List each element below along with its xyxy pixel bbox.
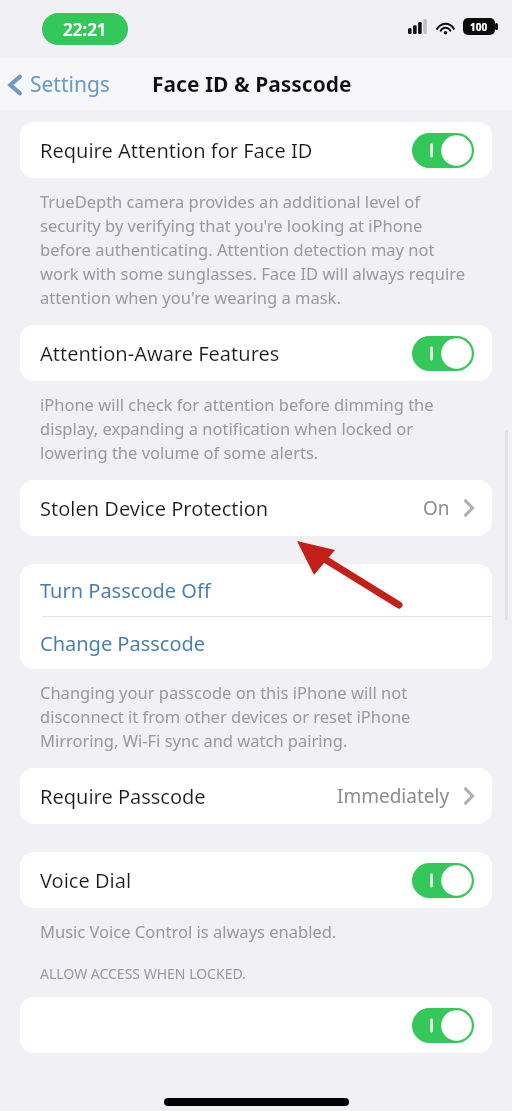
staticText: Voice Dial (40, 867, 412, 894)
staticText: TrueDepth camera provides an additional … (40, 190, 468, 309)
staticText: ALLOW ACCESS WHEN LOCKED. (40, 964, 246, 983)
button[interactable]: Require Attention for Face ID (20, 122, 492, 178)
button[interactable]: Turn Passcode Off (20, 564, 492, 616)
staticText: Immediately (337, 783, 450, 809)
staticText: Turn Passcode Off (40, 577, 211, 604)
staticText: 22:21 (63, 18, 107, 41)
button[interactable]: Voice Dial (20, 852, 492, 908)
staticText: Require Attention for Face ID (40, 137, 412, 164)
staticText: Face ID & Passcode (152, 70, 352, 99)
staticText: On (423, 495, 450, 521)
button[interactable]: Require Passcode (20, 768, 492, 824)
button[interactable]: Attention-Aware Features (20, 325, 492, 381)
button[interactable]: Settings (8, 70, 110, 99)
button[interactable] (20, 997, 492, 1053)
button[interactable]: Change Passcode (20, 617, 492, 669)
staticText: Change Passcode (40, 630, 206, 657)
staticText: iPhone will check for attention before d… (40, 393, 468, 464)
staticText: 100 (470, 20, 488, 34)
staticText: Settings (30, 70, 110, 99)
staticText: Require Passcode (40, 783, 337, 810)
staticText: Music Voice Control is always enabled. (40, 920, 337, 942)
staticText: Changing your passcode on this iPhone wi… (40, 681, 468, 752)
staticText: Attention-Aware Features (40, 340, 412, 367)
button[interactable]: Stolen Device Protection (20, 480, 492, 536)
staticText: Stolen Device Protection (40, 495, 423, 522)
